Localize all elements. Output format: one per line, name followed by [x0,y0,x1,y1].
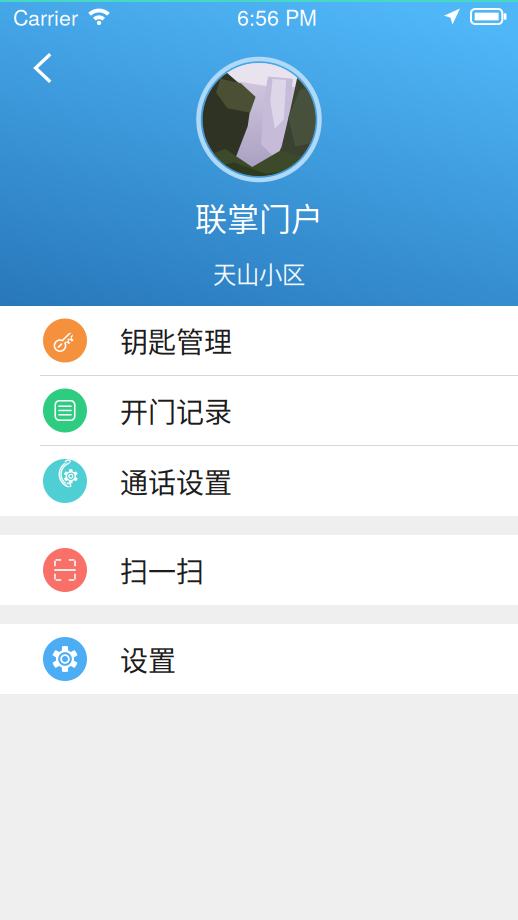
button[interactable]: 开门记录 [0,376,518,446]
staticText: 联掌门户 [195,194,323,240]
staticText: Carrier [13,1,78,32]
staticText: 钥匙管理 [120,320,232,361]
staticText: 扫一扫 [120,550,204,590]
button[interactable]: 通话设置 [0,446,518,516]
staticText: 通话设置 [120,461,232,501]
button[interactable]: 扫一扫 [0,535,518,605]
button[interactable]: Back [22,43,72,93]
button[interactable]: 钥匙管理 [0,306,518,376]
staticText: 开门记录 [120,390,232,431]
button[interactable]: 设置 [0,624,518,694]
staticText: 天山小区 [213,256,305,290]
staticText: 6:56 PM [237,1,317,32]
staticText: 设置 [120,639,176,679]
